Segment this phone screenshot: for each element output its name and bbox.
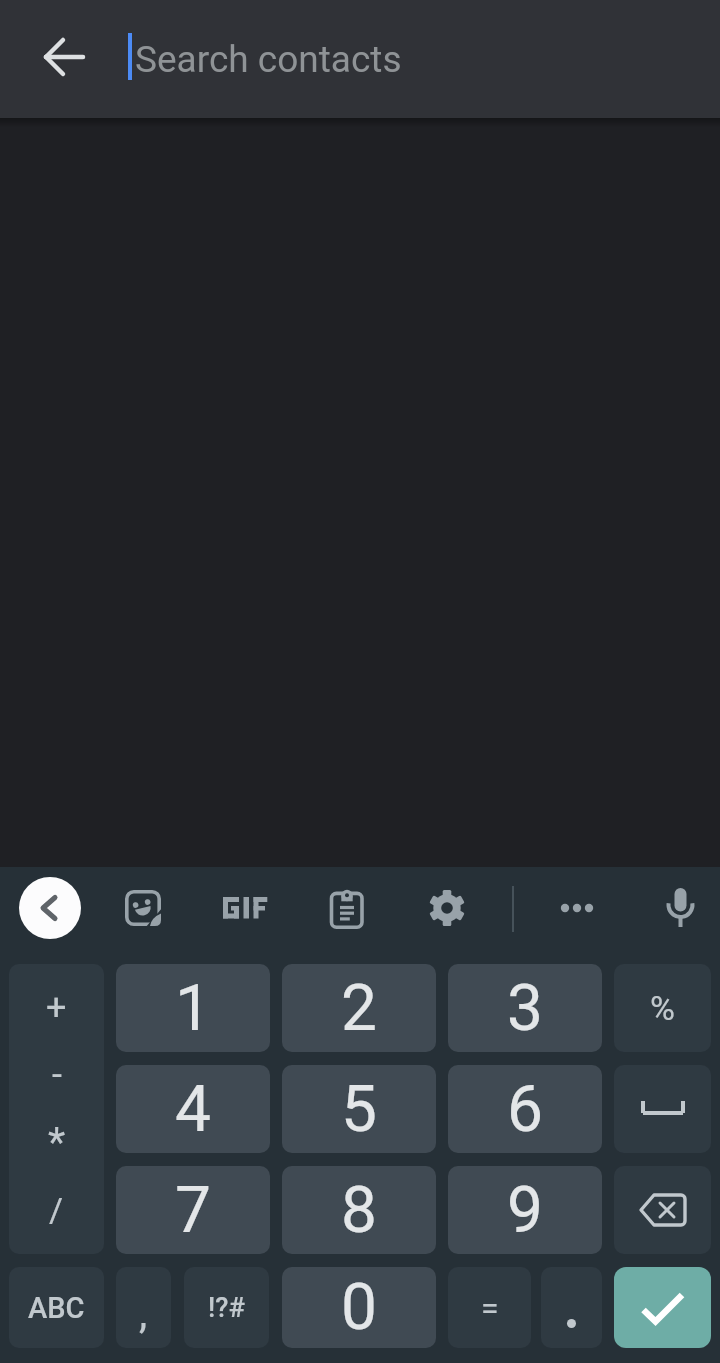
- button[interactable]: [19, 877, 81, 939]
- staticText: 2: [341, 971, 377, 1046]
- staticText: ABC: [28, 1291, 85, 1325]
- staticText: *: [48, 1119, 66, 1166]
- staticText: %: [650, 988, 675, 1028]
- button[interactable]: [547, 878, 607, 938]
- button[interactable]: ABC: [9, 1267, 104, 1348]
- staticText: -: [52, 1054, 62, 1096]
- button[interactable]: !?#: [184, 1267, 269, 1348]
- button[interactable]: [34, 27, 94, 87]
- button[interactable]: 6: [448, 1065, 602, 1153]
- button[interactable]: [614, 1267, 711, 1348]
- button[interactable]: 2: [282, 964, 436, 1052]
- button[interactable]: [541, 1267, 602, 1348]
- staticText: !?#: [208, 1292, 245, 1324]
- button[interactable]: [614, 1166, 711, 1254]
- button[interactable]: [316, 878, 376, 938]
- staticText: +: [46, 987, 67, 1029]
- staticText: 9: [507, 1173, 543, 1248]
- staticText: 3: [507, 971, 543, 1046]
- staticText: 4: [175, 1072, 211, 1147]
- button[interactable]: 5: [282, 1065, 436, 1153]
- button[interactable]: [650, 878, 710, 938]
- staticText: /: [49, 1190, 64, 1230]
- button[interactable]: =: [448, 1267, 531, 1348]
- staticText: 0: [341, 1270, 377, 1345]
- staticText: Search contacts: [135, 38, 402, 81]
- button[interactable]: ,: [116, 1267, 171, 1348]
- button[interactable]: 1: [116, 964, 270, 1052]
- staticText: 5: [341, 1072, 377, 1147]
- staticText: 6: [507, 1072, 543, 1147]
- button[interactable]: 0: [282, 1267, 436, 1348]
- button[interactable]: 9: [448, 1166, 602, 1254]
- button[interactable]: %: [614, 964, 711, 1052]
- staticText: 8: [341, 1173, 377, 1248]
- button[interactable]: [614, 1065, 711, 1153]
- button[interactable]: 4: [116, 1065, 270, 1153]
- button[interactable]: [210, 878, 280, 938]
- button[interactable]: 7: [116, 1166, 270, 1254]
- staticText: 7: [175, 1173, 211, 1248]
- button[interactable]: [417, 878, 477, 938]
- button[interactable]: [113, 878, 173, 938]
- staticText: 1: [175, 971, 211, 1046]
- staticText: ,: [139, 1289, 148, 1338]
- button[interactable]: 8: [282, 1166, 436, 1254]
- staticText: =: [481, 1289, 499, 1327]
- button[interactable]: 3: [448, 964, 602, 1052]
- button[interactable]: +: [9, 964, 104, 1254]
